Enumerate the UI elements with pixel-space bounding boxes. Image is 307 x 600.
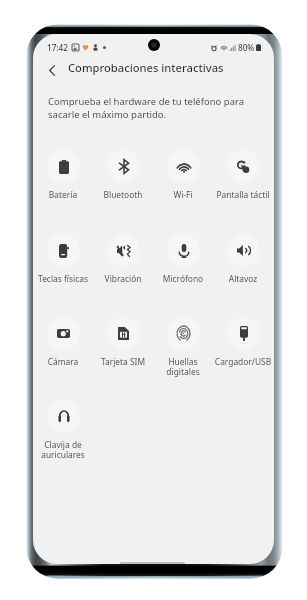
staticText: Tarjeta SIM xyxy=(93,356,153,367)
button[interactable]: Huellas digitales xyxy=(153,317,213,373)
staticText: Wi-Fi xyxy=(153,189,213,200)
staticText: Teclas físicas xyxy=(33,273,93,284)
button[interactable]: Micrófono xyxy=(153,234,213,290)
button[interactable]: Wi-Fi xyxy=(153,150,213,206)
button[interactable]: Altavoz xyxy=(213,234,273,290)
staticText: Bluetooth xyxy=(93,189,153,200)
staticText: Comprobaciones interactivas xyxy=(68,60,224,75)
button[interactable]: Cámara xyxy=(33,317,93,373)
staticText: Comprueba el hardware de tu teléfono par… xyxy=(48,95,246,121)
staticText: 17:42 xyxy=(47,42,68,53)
button[interactable]: Bluetooth xyxy=(93,150,153,206)
staticText: Micrófono xyxy=(153,273,213,284)
staticText: Batería xyxy=(33,189,93,200)
staticText: Vibración xyxy=(93,273,153,284)
staticText: Clavija de auriculares xyxy=(33,439,93,461)
button[interactable]: Atrás xyxy=(39,57,65,83)
button[interactable]: Cargador/USB xyxy=(213,317,273,373)
button[interactable]: Batería xyxy=(33,150,93,206)
button[interactable]: Teclas físicas xyxy=(33,234,93,290)
staticText: Huellas digitales xyxy=(153,356,213,378)
staticText: 80% xyxy=(238,42,255,53)
staticText: Altavoz xyxy=(213,273,273,284)
staticText: Cargador/USB xyxy=(213,356,273,367)
button[interactable]: Tarjeta SIM xyxy=(93,317,153,373)
button[interactable]: Vibración xyxy=(93,234,153,290)
button[interactable]: Pantalla táctil xyxy=(213,150,273,206)
staticText: Cámara xyxy=(33,356,93,367)
staticText: Pantalla táctil xyxy=(213,189,273,200)
button[interactable]: Clavija de auriculares xyxy=(33,400,93,456)
